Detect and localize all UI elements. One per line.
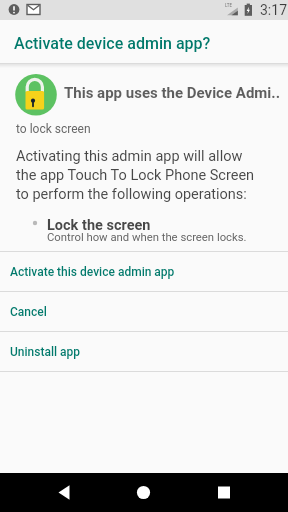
button[interactable]: Activate this device admin app (0, 252, 288, 291)
button[interactable] (200, 473, 248, 512)
staticText: Lock the screen (47, 217, 151, 234)
staticText: 3:17 (260, 2, 287, 18)
staticText: LTE (225, 3, 233, 8)
staticText: Activating this admin app will allow the… (16, 148, 255, 203)
staticText: This app uses the Device Admi.. (64, 84, 281, 102)
button[interactable] (120, 473, 168, 512)
button[interactable]: Uninstall app (0, 332, 288, 371)
staticText: to lock screen (16, 122, 91, 136)
staticText: Activate this device admin app (10, 265, 175, 279)
staticText: Uninstall app (10, 345, 81, 359)
staticText: Control how and when the screen locks. (47, 231, 247, 244)
staticText: Activate device admin app? (14, 34, 211, 53)
button[interactable] (40, 473, 88, 512)
button[interactable]: Cancel (0, 292, 288, 331)
staticText: Cancel (10, 305, 47, 319)
